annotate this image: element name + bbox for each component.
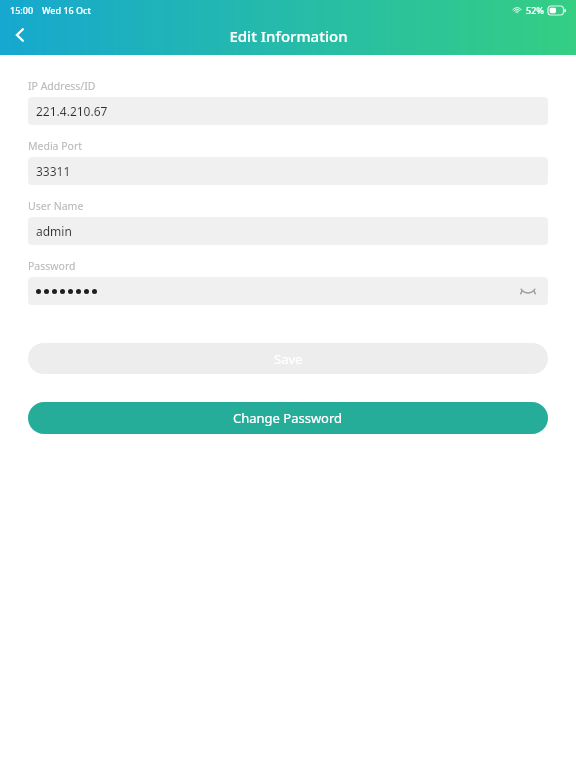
staticText: Password <box>28 259 76 273</box>
button[interactable]: 221.4.210.67 <box>28 97 548 125</box>
staticText: 221.4.210.67 <box>36 103 108 119</box>
staticText: Save <box>274 350 303 368</box>
staticText: 52% <box>526 4 544 16</box>
button[interactable]: admin <box>28 217 548 245</box>
button[interactable]: 33311 <box>28 157 548 185</box>
staticText: admin <box>36 223 72 239</box>
button[interactable]: Back <box>2 17 38 53</box>
staticText: User Name <box>28 199 84 213</box>
button[interactable]: Show password <box>28 277 548 305</box>
button[interactable]: Change Password <box>28 402 548 434</box>
staticText: Change Password <box>233 409 343 427</box>
staticText: Edit Information <box>229 26 348 46</box>
staticText: 33311 <box>36 163 71 179</box>
staticText: IP Address/ID <box>28 79 96 93</box>
staticText: Wed 16 Oct <box>42 4 91 16</box>
staticText: Media Port <box>28 139 83 153</box>
staticText: 15:00 <box>10 4 34 16</box>
button[interactable]: Show password <box>516 279 540 303</box>
